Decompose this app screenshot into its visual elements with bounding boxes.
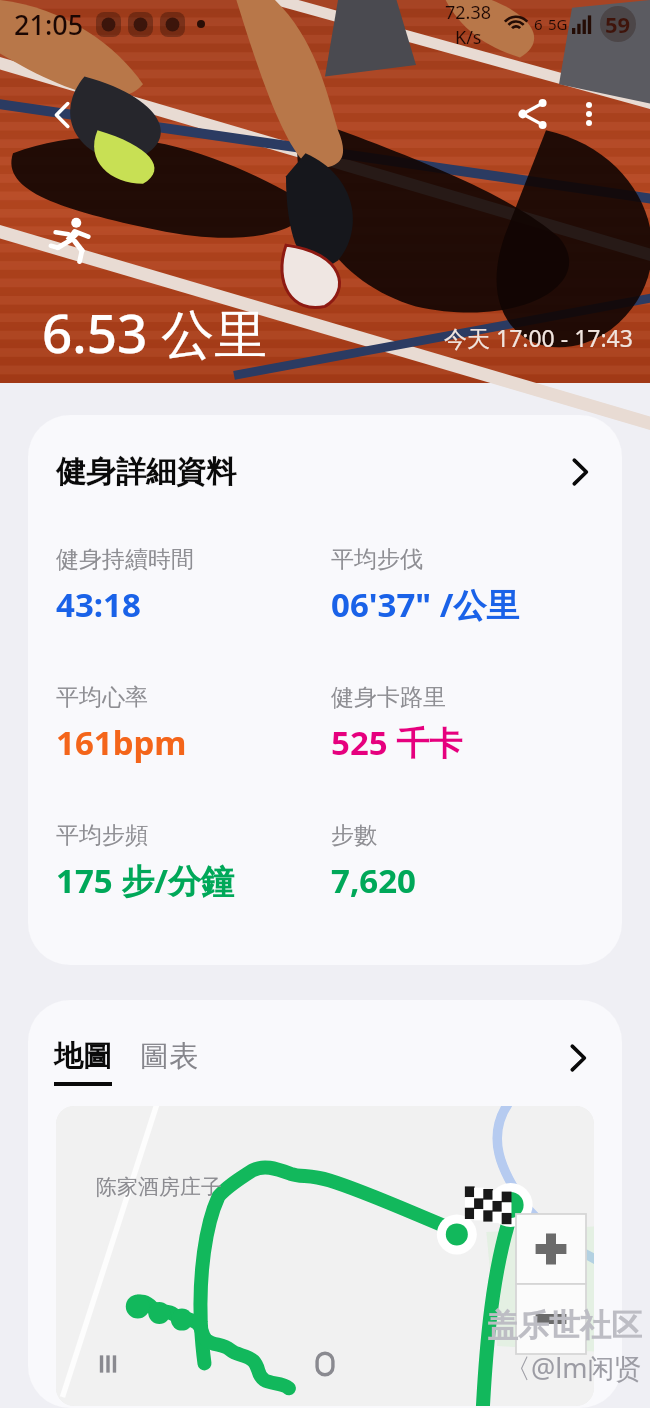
button[interactable]: Route map — [56, 1106, 594, 1406]
staticText: 59 — [605, 9, 631, 39]
staticText: 161bpm — [56, 720, 187, 765]
staticText: 6 — [534, 14, 543, 34]
staticText: 健身持續時間 — [56, 545, 194, 574]
button[interactable]: Open map details — [558, 1038, 598, 1078]
staticText: 6.53 公里 — [42, 296, 268, 368]
staticText: K/s — [455, 25, 482, 48]
staticText: 72.38 — [445, 0, 492, 25]
button[interactable]: Zoom in — [516, 1214, 586, 1284]
staticText: 〈@lm闲贤 — [504, 1349, 642, 1386]
button[interactable]: 健身詳細資料 — [28, 415, 622, 965]
button[interactable]: 圖表 — [140, 1038, 198, 1086]
staticText: 地圖 — [54, 1038, 112, 1075]
button[interactable]: Back — [34, 86, 92, 144]
button[interactable]: 地圖 — [54, 1038, 112, 1086]
staticText: 7,620 — [331, 858, 416, 903]
staticText: 43:18 — [56, 582, 141, 627]
button[interactable]: More options — [559, 84, 619, 144]
staticText: 盖乐世社区 — [487, 1306, 642, 1345]
staticText: 06'37" /公里 — [331, 582, 520, 627]
staticText: 步數 — [331, 821, 377, 850]
button[interactable]: Recent apps — [0, 1320, 216, 1408]
button[interactable]: Home — [216, 1320, 433, 1408]
staticText: 陈家酒房庄子 — [96, 1174, 222, 1200]
staticText: 175 步/分鐘 — [56, 858, 234, 903]
button[interactable]: Zoom out — [516, 1284, 586, 1354]
button[interactable]: Back — [433, 1320, 650, 1408]
staticText: 平均步頻 — [56, 821, 148, 850]
staticText: 圖表 — [140, 1038, 198, 1075]
staticText: 健身詳細資料 — [56, 453, 236, 491]
staticText: 平均心率 — [56, 683, 148, 712]
staticText: 525 千卡 — [331, 720, 463, 765]
staticText: 健身卡路里 — [331, 683, 446, 712]
staticText: 平均步伐 — [331, 545, 423, 574]
staticText: 5G — [548, 14, 568, 34]
staticText: 21:05 — [14, 6, 84, 43]
staticText: 今天 17:00 - 17:43 — [444, 322, 633, 353]
button[interactable]: Share — [503, 84, 563, 144]
